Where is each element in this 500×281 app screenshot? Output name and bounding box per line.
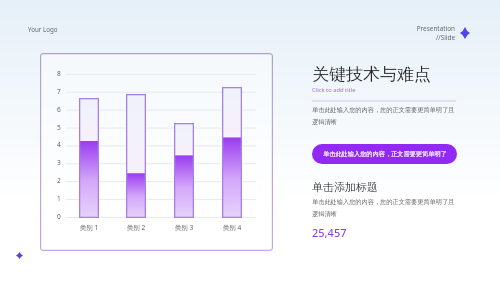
staticText: 类别 1 [71, 223, 107, 232]
staticText: Click to add title [312, 86, 356, 94]
button[interactable]: 单击此处输入您的内容，正文需要更简单明了 [312, 144, 457, 164]
button[interactable]: Sparkle decoration [460, 27, 470, 39]
staticText: Your Logo [28, 25, 58, 33]
staticText: 8 [55, 69, 63, 78]
staticText: 7 [55, 87, 63, 96]
staticText: 1 [55, 194, 63, 203]
button[interactable]: 单击添加标题 [312, 180, 378, 194]
staticText: 单击此处输入您的内容，您的正文需要更简单明了且逻辑清晰 [312, 198, 458, 218]
staticText: 3 [55, 158, 63, 167]
staticText: 关键技术与难点 [312, 64, 431, 85]
staticText: 4 [55, 140, 63, 149]
staticText: Presentation [416, 24, 455, 33]
button[interactable]: Your Logo [28, 25, 58, 33]
button[interactable]: Bar chart, four categories [40, 53, 273, 251]
staticText: 5 [55, 123, 63, 132]
staticText: //Slide [435, 33, 455, 42]
staticText: 类别 4 [214, 223, 250, 232]
other: Small sparkle decoration [16, 252, 23, 259]
staticText: 类别 3 [166, 223, 202, 232]
staticText: 单击添加标题 [312, 180, 378, 194]
button[interactable]: Click to add title [312, 86, 356, 94]
button[interactable]: 25,457 [312, 225, 347, 240]
staticText: 6 [55, 105, 63, 114]
button[interactable]: 关键技术与难点 [312, 64, 431, 85]
staticText: 0 [55, 212, 63, 221]
staticText: 单击此处输入您的内容，您的正文需要更简单明了且逻辑清晰 [312, 106, 458, 126]
staticText: 2 [55, 176, 63, 185]
staticText: 类别 2 [118, 223, 154, 232]
button[interactable]: Presentation [393, 24, 455, 42]
staticText: 25,457 [312, 225, 347, 240]
staticText: 单击此处输入您的内容，正文需要更简单明了 [323, 150, 447, 158]
